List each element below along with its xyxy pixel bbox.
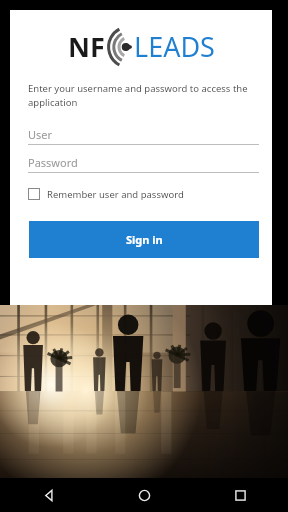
button[interactable]: Password: [28, 153, 259, 173]
staticText: Password: [28, 155, 78, 170]
button[interactable]: Sign in: [29, 221, 259, 258]
button[interactable]: User: [28, 125, 259, 145]
staticText: Remember user and password: [47, 188, 184, 201]
staticText: NF: [68, 28, 105, 65]
staticText: User: [28, 127, 53, 142]
button[interactable]: Home: [96, 478, 192, 512]
staticText: LEADS: [134, 28, 215, 65]
button[interactable]: Remember user and password: [28, 183, 184, 205]
button[interactable]: Back: [0, 478, 96, 512]
staticText: Enter your username and password to acce…: [28, 82, 258, 109]
button[interactable]: Recent apps: [192, 478, 288, 512]
staticText: Sign in: [126, 232, 163, 247]
